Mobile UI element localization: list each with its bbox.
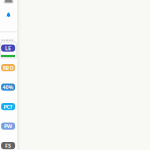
staticText: FS [5, 142, 11, 149]
staticText: PCT [4, 103, 13, 110]
staticText: LE [5, 45, 11, 52]
staticText: PW [4, 123, 12, 130]
button[interactable]: RBO [1, 64, 15, 71]
button[interactable]: PW [1, 122, 15, 130]
button[interactable]: 40% [1, 83, 15, 91]
button[interactable]: Notifications [6, 12, 11, 17]
button[interactable]: PCT [1, 103, 15, 110]
staticText: RBO [3, 64, 14, 71]
button[interactable]: LE [1, 44, 15, 52]
staticText: 40% [3, 84, 14, 91]
button[interactable]: FS [1, 142, 15, 149]
